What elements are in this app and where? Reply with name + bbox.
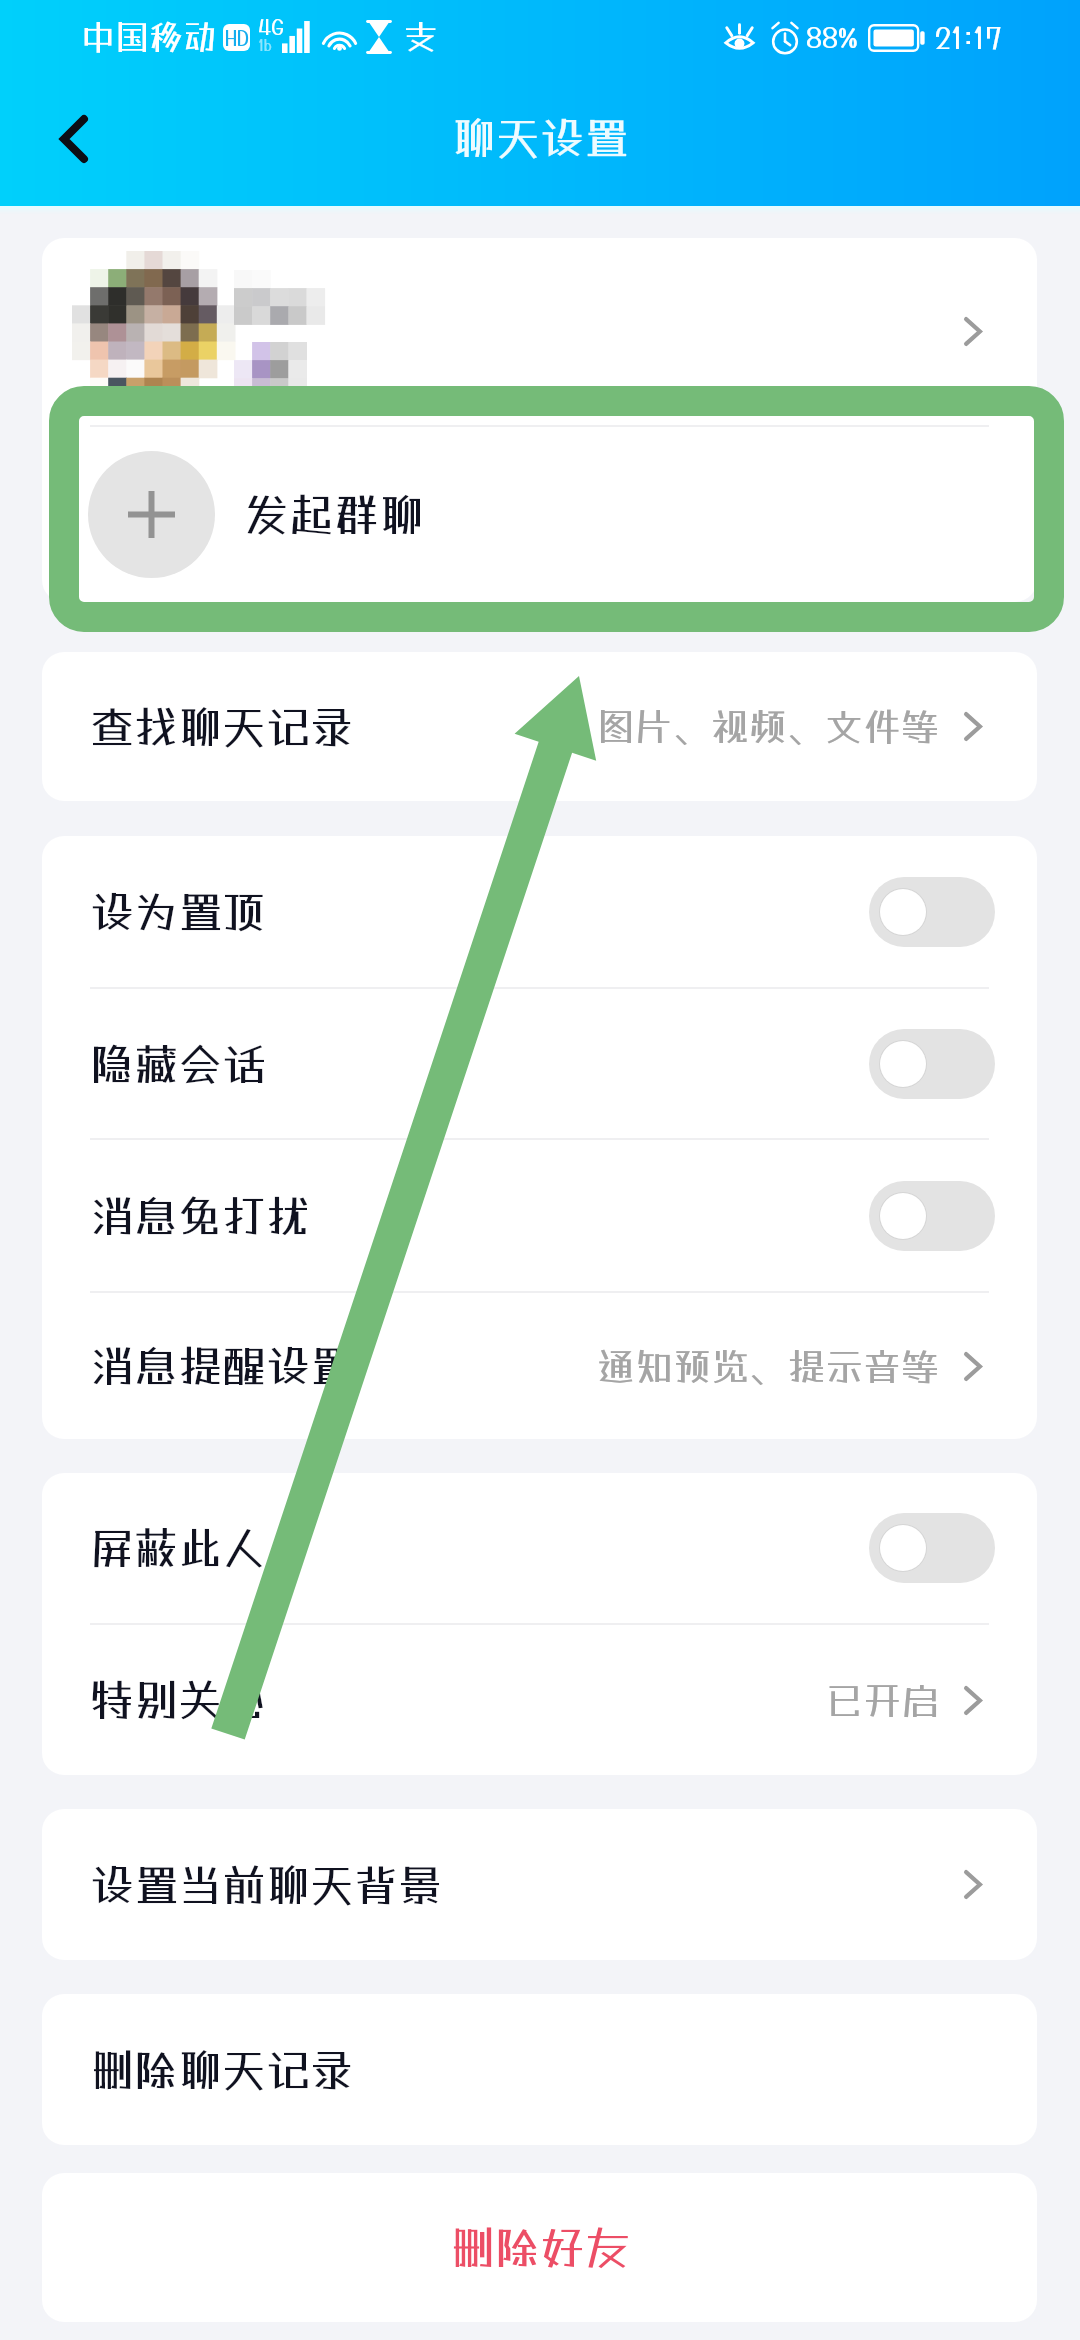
button[interactable]: 特别关心 bbox=[42, 1625, 1037, 1775]
button[interactable]: 设置当前聊天背景 bbox=[42, 1809, 1037, 1960]
other: 通知预览、提示音等 bbox=[597, 1344, 939, 1389]
button[interactable]: 查找聊天记录 bbox=[42, 652, 1037, 801]
button[interactable]: Toggle bbox=[869, 1029, 995, 1099]
other: 中国移动 bbox=[81, 17, 217, 57]
other: 图片、视频、文件等 bbox=[597, 704, 939, 749]
other: 查找聊天记录 bbox=[90, 701, 354, 753]
button[interactable]: 隐藏会话 bbox=[42, 989, 1037, 1138]
other: 屏蔽此人 bbox=[90, 1522, 266, 1574]
button[interactable]: 设为置顶 bbox=[42, 836, 1037, 987]
other: 支 bbox=[404, 17, 438, 57]
button[interactable]: Back bbox=[19, 84, 129, 194]
button[interactable]: Toggle bbox=[869, 1513, 995, 1583]
button[interactable]: 发起群聊 bbox=[42, 427, 1037, 602]
other: 消息提醒设置 bbox=[90, 1340, 354, 1392]
other: 特别关心 bbox=[90, 1674, 266, 1726]
other: 21:17 bbox=[935, 20, 1002, 55]
other: 已开启 bbox=[825, 1678, 939, 1723]
other: 删除聊天记录 bbox=[90, 2044, 354, 2096]
other: 删除好友 bbox=[450, 2221, 630, 2274]
button[interactable]: Toggle bbox=[869, 877, 995, 947]
other: 消息免打扰 bbox=[90, 1190, 310, 1242]
button[interactable]: 屏蔽此人 bbox=[42, 1473, 1037, 1623]
button[interactable]: 消息免打扰 bbox=[42, 1140, 1037, 1291]
other: 隐藏会话 bbox=[90, 1038, 266, 1090]
button[interactable]: 删除聊天记录 bbox=[42, 1994, 1037, 2145]
button[interactable]: 消息提醒设置 bbox=[42, 1293, 1037, 1439]
other: 聊天设置 bbox=[452, 112, 628, 164]
other: 设置当前聊天背景 bbox=[90, 1859, 442, 1911]
other: 设为置顶 bbox=[90, 886, 266, 938]
other: 88% bbox=[806, 21, 858, 54]
button[interactable]: 删除好友 bbox=[42, 2173, 1037, 2322]
button[interactable]: Toggle bbox=[869, 1181, 995, 1251]
other: 发起群聊 bbox=[244, 488, 424, 541]
button[interactable]: Contact profile bbox=[42, 238, 1037, 425]
